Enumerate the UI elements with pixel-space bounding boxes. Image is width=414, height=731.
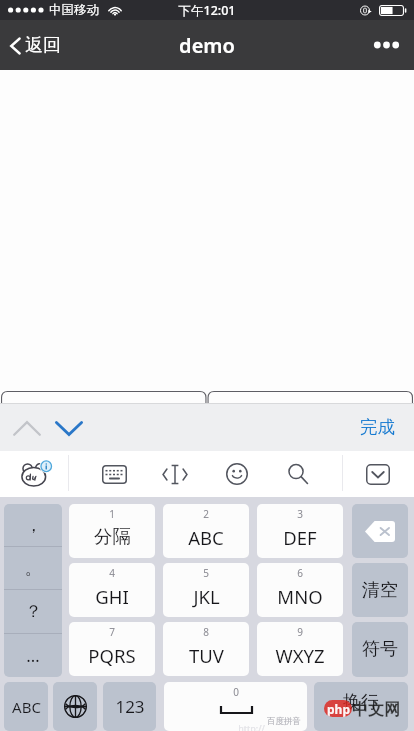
- button[interactable]: 9: [257, 622, 343, 676]
- button[interactable]: …: [4, 634, 62, 677]
- staticText: JKL: [193, 584, 220, 609]
- staticText: 123: [115, 695, 145, 718]
- staticText: 8: [203, 625, 209, 639]
- button[interactable]: 完成: [346, 408, 414, 446]
- button[interactable]: 7: [69, 622, 155, 676]
- button[interactable]: ？: [4, 590, 62, 633]
- staticText: 中文网: [352, 700, 400, 720]
- staticText: 7: [109, 625, 115, 639]
- staticText: demo: [179, 32, 235, 59]
- staticText: 换行: [343, 691, 379, 714]
- staticText: http://: [238, 722, 265, 731]
- staticText: PQRS: [88, 643, 136, 668]
- staticText: WXYZ: [275, 643, 325, 668]
- button[interactable]: 3: [257, 504, 343, 558]
- button[interactable]: 符号: [352, 622, 408, 677]
- staticText: 完成: [360, 416, 395, 438]
- staticText: GHI: [95, 584, 129, 609]
- button[interactable]: Hide keyboard: [346, 451, 410, 497]
- button[interactable]: 。: [4, 547, 62, 589]
- staticText: ？: [25, 601, 42, 622]
- staticText: 分隔: [94, 525, 131, 548]
- staticText: ABC: [12, 697, 41, 717]
- staticText: 1: [109, 507, 115, 521]
- staticText: 。: [25, 558, 42, 579]
- button[interactable]: Baidu input method: [4, 451, 68, 497]
- button[interactable]: ABC: [4, 682, 48, 731]
- staticText: 5: [203, 566, 209, 580]
- button[interactable]: 6: [257, 563, 343, 617]
- staticText: 3: [297, 507, 303, 521]
- button[interactable]: Move cursor: [152, 451, 198, 497]
- button[interactable]: 123: [103, 682, 156, 731]
- button[interactable]: 4: [69, 563, 155, 617]
- button[interactable]: 返回: [0, 26, 71, 65]
- staticText: ABC: [188, 525, 224, 550]
- staticText: 2: [203, 507, 209, 521]
- staticText: php: [327, 701, 350, 717]
- button[interactable]: Next field: [48, 407, 90, 447]
- button[interactable]: 1: [69, 504, 155, 558]
- staticText: 百度拼音: [267, 716, 301, 727]
- staticText: MNO: [277, 584, 323, 609]
- staticText: 下午12:01: [178, 2, 236, 19]
- button[interactable]: Emoji: [214, 451, 260, 497]
- staticText: ，: [25, 515, 42, 536]
- button[interactable]: Delete: [352, 504, 408, 558]
- button[interactable]: 8: [163, 622, 249, 676]
- button[interactable]: 2: [163, 504, 249, 558]
- staticText: 6: [297, 566, 303, 580]
- staticText: 9: [297, 625, 303, 639]
- button[interactable]: More options: [359, 29, 414, 61]
- button[interactable]: Previous field: [6, 407, 48, 447]
- button[interactable]: 换行: [314, 682, 408, 731]
- button[interactable]: 清空: [352, 563, 408, 617]
- staticText: 返回: [25, 34, 61, 57]
- staticText: 4: [109, 566, 115, 580]
- staticText: 中国移动: [49, 2, 99, 18]
- staticText: TUV: [189, 643, 224, 668]
- staticText: DEF: [283, 525, 317, 550]
- staticText: …: [26, 644, 40, 667]
- button[interactable]: ，: [4, 504, 62, 546]
- button[interactable]: Keyboard layout: [91, 451, 137, 497]
- staticText: 清空: [362, 579, 398, 602]
- staticText: 符号: [362, 638, 398, 661]
- button[interactable]: 5: [163, 563, 249, 617]
- button[interactable]: Space: [164, 682, 307, 731]
- staticText: 0: [233, 685, 239, 699]
- button[interactable]: Search: [275, 451, 321, 497]
- button[interactable]: Switch language: [53, 682, 97, 731]
